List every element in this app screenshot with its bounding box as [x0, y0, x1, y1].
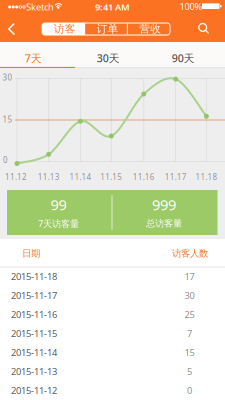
staticText: Sketch	[26, 1, 54, 13]
staticText: 11.14	[69, 172, 91, 182]
staticText: 15	[184, 346, 194, 359]
staticText: 总访客量	[146, 218, 182, 229]
staticText: 30	[184, 289, 194, 302]
staticText: 营收	[139, 22, 161, 35]
staticText: 999	[152, 195, 176, 214]
staticText: 2015-11-12	[11, 384, 57, 397]
staticText: 0	[3, 155, 8, 165]
staticText: 2015-11-17	[11, 289, 57, 302]
button[interactable]: 营收	[127, 23, 170, 35]
staticText: 99	[50, 195, 66, 214]
staticText: 15	[2, 114, 12, 125]
staticText: 0	[187, 384, 192, 397]
staticText: 2015-11-14	[11, 346, 57, 359]
staticText: 2015-11-18	[11, 270, 57, 283]
staticText: 7天	[25, 51, 42, 65]
button[interactable]: 订单	[85, 23, 127, 35]
staticText: 访客人数	[172, 248, 208, 259]
staticText: 9:41 AM	[95, 1, 130, 13]
staticText: 5	[187, 365, 192, 378]
staticText: 30	[2, 72, 12, 83]
staticText: 11.18	[195, 172, 217, 182]
staticText: 90天	[172, 51, 195, 65]
staticText: 11.12	[5, 172, 27, 182]
button[interactable]: 7天	[0, 45, 75, 71]
staticText: 25	[184, 308, 194, 321]
staticText: 日期	[22, 248, 40, 259]
button[interactable]: Search	[198, 22, 210, 34]
staticText: 11.13	[38, 172, 60, 182]
staticText: 30天	[97, 51, 120, 65]
button[interactable]: Back	[8, 23, 16, 35]
staticText: 11.15	[100, 172, 122, 182]
staticText: 17	[184, 270, 194, 283]
staticText: 7天访客量	[38, 217, 79, 230]
staticText: 7	[187, 327, 192, 340]
staticText: 2015-11-15	[11, 327, 57, 340]
staticText: 2015-11-13	[11, 365, 57, 378]
button[interactable]: 30天	[75, 45, 150, 71]
staticText: 2015-11-16	[11, 308, 57, 321]
button[interactable]: 90天	[150, 45, 225, 71]
button[interactable]: 访客	[42, 23, 85, 35]
staticText: 11.17	[165, 172, 187, 182]
staticText: 100%	[179, 0, 202, 13]
staticText: 11.16	[133, 172, 155, 182]
staticText: 访客	[54, 22, 76, 35]
staticText: 订单	[96, 22, 118, 35]
